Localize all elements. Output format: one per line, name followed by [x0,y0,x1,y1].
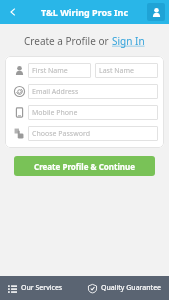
button[interactable]: Email Address [28,84,158,99]
staticText: Last Name [99,66,135,76]
staticText: Create Profile & Continue [34,161,136,172]
button[interactable]: Our Services [0,276,84,300]
staticText: Quality Guarantee [101,283,162,293]
staticText: Sign In [112,34,145,48]
button[interactable]: Back [0,0,26,24]
staticText: Email Address [32,87,79,97]
staticText: Choose Password [32,129,91,139]
button[interactable]: Sign In [112,34,145,48]
button[interactable]: Last Name [95,63,158,78]
button[interactable]: Choose Password [28,126,158,141]
staticText: Create a Profile or [24,34,112,48]
button[interactable]: First Name [28,63,91,78]
staticText: T&L Wiring Pros Inc [41,6,129,18]
staticText: Mobile Phone [32,108,78,118]
button[interactable]: Mobile Phone [28,105,158,120]
staticText: First Name [32,66,68,76]
button[interactable]: Create Profile & Continue [14,156,155,176]
button[interactable]: Account [147,3,165,21]
staticText: Our Services [21,283,63,293]
button[interactable]: Quality Guarantee [84,276,169,300]
